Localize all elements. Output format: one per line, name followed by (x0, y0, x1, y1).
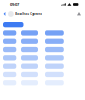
staticText: Bacalhau Cyprano (15, 12, 42, 16)
button[interactable] (45, 30, 64, 36)
button[interactable]: Back (2, 9, 7, 19)
button[interactable] (3, 72, 16, 77)
button[interactable] (21, 39, 38, 44)
button[interactable]: More (75, 9, 83, 19)
button[interactable] (45, 80, 64, 85)
button[interactable] (21, 80, 38, 85)
button[interactable] (21, 47, 38, 52)
button[interactable] (45, 47, 64, 52)
button[interactable] (3, 55, 16, 60)
button[interactable] (3, 22, 23, 27)
button[interactable] (45, 72, 64, 77)
button[interactable] (45, 55, 64, 60)
button[interactable] (45, 63, 64, 69)
button[interactable] (3, 39, 16, 44)
button[interactable] (3, 63, 16, 69)
button[interactable] (21, 72, 38, 77)
button[interactable] (3, 30, 16, 36)
button[interactable] (3, 80, 16, 85)
button[interactable] (21, 63, 38, 69)
button[interactable] (3, 47, 16, 52)
button[interactable] (21, 30, 38, 36)
button[interactable] (21, 55, 38, 60)
staticText: 09:07 (10, 2, 19, 7)
button[interactable] (45, 39, 64, 44)
